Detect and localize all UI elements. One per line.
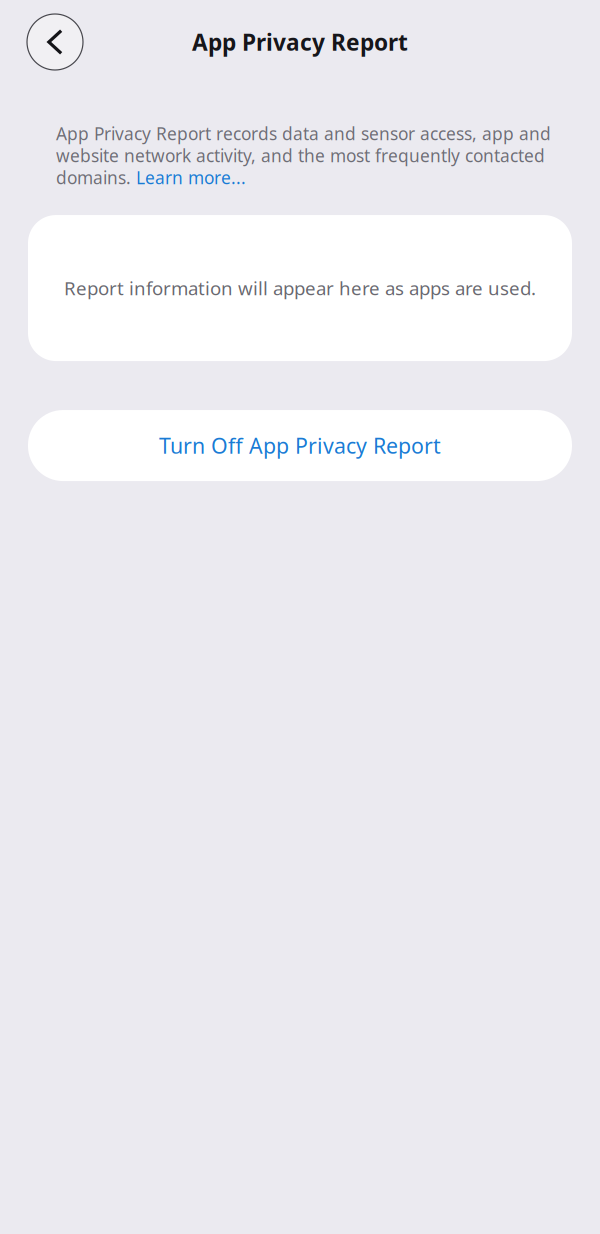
staticText: domains. bbox=[56, 166, 136, 189]
button[interactable]: Back bbox=[27, 14, 83, 70]
staticText: website network activity, and the most f… bbox=[56, 144, 545, 167]
staticText: App Privacy Report bbox=[192, 27, 408, 57]
button[interactable]: Learn more... bbox=[136, 166, 246, 189]
staticText: Learn more... bbox=[136, 166, 246, 189]
staticText: App Privacy Report records data and sens… bbox=[56, 122, 551, 145]
staticText: Turn Off App Privacy Report bbox=[159, 431, 441, 460]
button[interactable]: Turn Off App Privacy Report bbox=[0, 410, 600, 481]
staticText: Report information will appear here as a… bbox=[64, 276, 536, 300]
